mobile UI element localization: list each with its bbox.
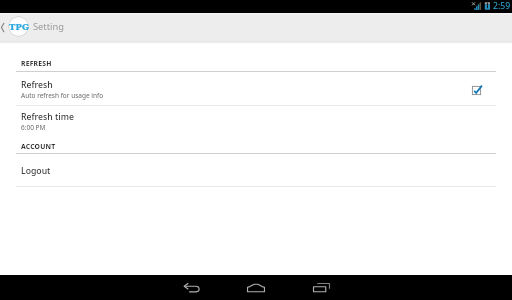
button[interactable]: Back (168, 275, 216, 300)
staticText: Auto refresh for usage info (21, 91, 104, 100)
staticText: Refresh time (21, 111, 74, 123)
button[interactable]: Home (232, 275, 280, 300)
staticText: 6:00 PM (21, 123, 46, 132)
button[interactable]: Auto refresh (469, 83, 483, 97)
button[interactable]: Refresh time (0, 105, 512, 132)
button[interactable]: ACCOUNT (21, 142, 56, 151)
staticText: 2:59 (493, 0, 511, 12)
staticText: ACCOUNT (21, 142, 56, 151)
button[interactable]: Refresh (0, 73, 512, 100)
button[interactable]: Navigate up (0, 13, 32, 41)
button[interactable]: Recent apps (297, 275, 345, 300)
staticText: Setting (33, 20, 64, 33)
staticText: Refresh (21, 79, 53, 91)
button[interactable]: REFRESH (21, 59, 52, 68)
staticText: TPG (9, 20, 30, 33)
staticText: Logout (21, 165, 51, 177)
staticText: REFRESH (21, 59, 52, 68)
button[interactable]: Logout (0, 159, 512, 177)
